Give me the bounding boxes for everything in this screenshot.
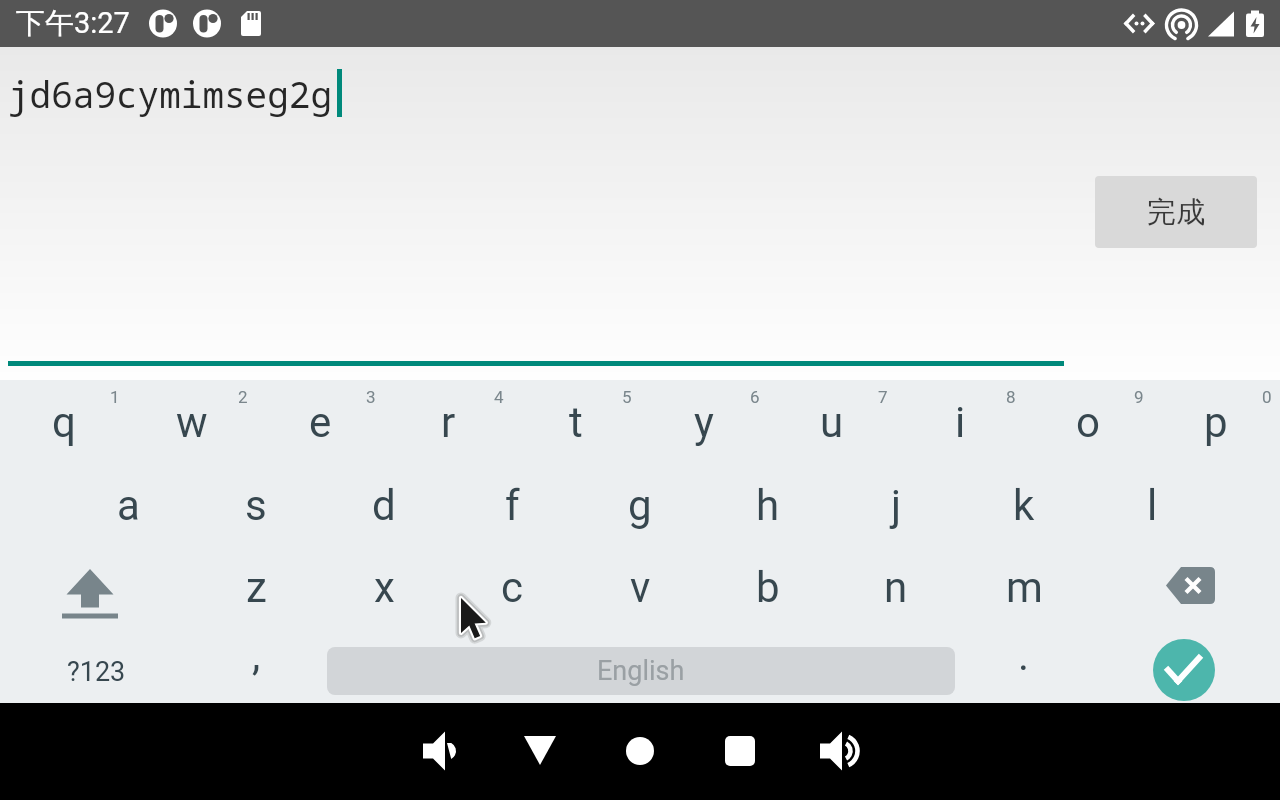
staticText: jd6a9cymimseg2g — [8, 70, 333, 119]
button[interactable]: s — [192, 461, 320, 542]
button[interactable]: f — [448, 461, 576, 542]
button[interactable]: p — [1152, 380, 1280, 461]
staticText: 下午3:27 — [16, 5, 130, 42]
staticText: 5 — [622, 387, 632, 407]
button[interactable] — [0, 542, 192, 623]
staticText: y — [694, 398, 714, 447]
staticText: b — [756, 563, 780, 612]
button[interactable]: , — [192, 623, 320, 703]
button[interactable]: y — [640, 380, 768, 461]
staticText: x — [374, 563, 395, 612]
button[interactable]: h — [704, 461, 832, 542]
button[interactable]: q — [0, 380, 128, 461]
staticText: h — [756, 481, 780, 530]
button[interactable] — [700, 711, 780, 791]
staticText: 完成 — [1147, 194, 1205, 231]
staticText: m — [1006, 563, 1043, 612]
button[interactable]: 完成 — [1095, 176, 1257, 248]
button[interactable]: k — [960, 461, 1088, 542]
staticText: g — [628, 481, 652, 530]
staticText: q — [52, 398, 76, 447]
button[interactable]: g — [576, 461, 704, 542]
button[interactable]: l — [1088, 461, 1216, 542]
staticText: 6 — [750, 387, 760, 407]
button[interactable] — [800, 711, 880, 791]
button[interactable]: j — [832, 461, 960, 542]
button[interactable]: English — [327, 647, 955, 695]
staticText: z — [246, 563, 267, 612]
staticText: 8 — [1006, 387, 1016, 407]
staticText: 4 — [494, 387, 504, 407]
button[interactable] — [1088, 542, 1280, 623]
button[interactable]: x — [320, 542, 448, 623]
button[interactable]: d — [320, 461, 448, 542]
button[interactable]: r — [384, 380, 512, 461]
button[interactable]: . — [960, 623, 1088, 703]
button[interactable]: m — [960, 542, 1088, 623]
button[interactable]: z — [192, 542, 320, 623]
staticText: l — [1147, 481, 1158, 530]
button[interactable]: a — [64, 461, 192, 542]
staticText: k — [1013, 481, 1035, 530]
staticText: 0 — [1262, 387, 1272, 407]
staticText: u — [820, 398, 844, 447]
button[interactable] — [400, 711, 480, 791]
button[interactable]: c — [448, 542, 576, 623]
button[interactable]: n — [832, 542, 960, 623]
staticText: r — [441, 398, 456, 447]
button[interactable]: b — [704, 542, 832, 623]
button[interactable] — [500, 711, 580, 791]
button[interactable]: t — [512, 380, 640, 461]
staticText: a — [117, 481, 140, 530]
staticText: t — [569, 398, 583, 447]
staticText: , — [252, 631, 261, 680]
staticText: i — [955, 398, 966, 447]
staticText: v — [630, 563, 651, 612]
staticText: j — [891, 481, 902, 530]
staticText: w — [176, 398, 208, 447]
staticText: ?123 — [67, 656, 126, 688]
button[interactable]: e — [256, 380, 384, 461]
button[interactable] — [1088, 623, 1280, 703]
staticText: n — [884, 563, 908, 612]
staticText: f — [505, 481, 520, 530]
staticText: 9 — [1134, 387, 1144, 407]
button[interactable] — [600, 711, 680, 791]
staticText: English — [597, 655, 685, 687]
button[interactable]: v — [576, 542, 704, 623]
staticText: d — [372, 481, 396, 530]
button[interactable]: ?123 — [0, 623, 192, 703]
button[interactable]: w — [128, 380, 256, 461]
button[interactable]: i — [896, 380, 1024, 461]
staticText: . — [1018, 631, 1030, 680]
staticText: c — [501, 563, 523, 612]
staticText: o — [1076, 398, 1100, 447]
button[interactable]: o — [1024, 380, 1152, 461]
staticText: s — [245, 481, 267, 530]
staticText: 7 — [878, 387, 888, 407]
staticText: 3 — [366, 387, 376, 407]
staticText: 1 — [110, 387, 120, 407]
staticText: 2 — [238, 387, 248, 407]
button[interactable]: u — [768, 380, 896, 461]
staticText: p — [1204, 398, 1228, 447]
staticText: e — [309, 398, 332, 447]
